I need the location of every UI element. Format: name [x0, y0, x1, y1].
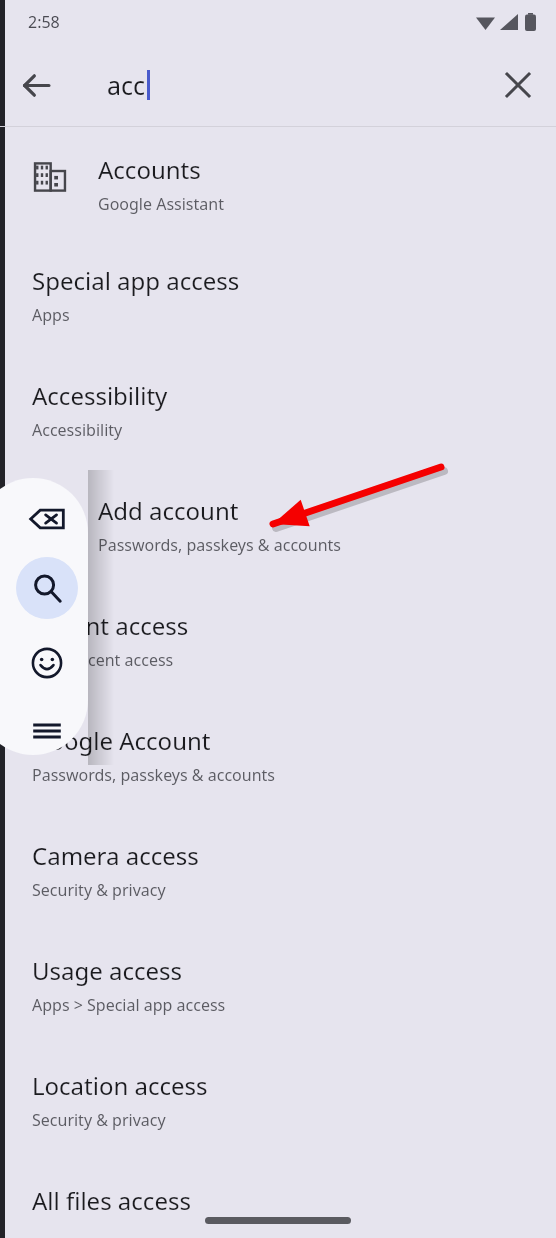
button[interactable]: Menu: [16, 707, 78, 755]
staticText: on > Recent access: [32, 649, 174, 671]
staticText: Camera access: [32, 839, 199, 872]
staticText: Location access: [32, 1069, 208, 1102]
button[interactable]: Emoji: [16, 632, 78, 694]
staticText: All files access: [32, 1184, 191, 1217]
button[interactable]: Accounts: [0, 127, 556, 242]
staticText: Security & privacy: [32, 879, 166, 901]
staticText: Usage access: [32, 954, 183, 987]
button[interactable]: Location access: [0, 1047, 556, 1162]
staticText: Add account: [98, 494, 239, 527]
staticText: Security & privacy: [32, 1109, 166, 1131]
button[interactable]: Accessibility: [0, 357, 556, 472]
button[interactable]: Usage access: [0, 932, 556, 1047]
button[interactable]: Clear search: [492, 59, 544, 111]
staticText: Special app access: [32, 264, 240, 297]
button[interactable]: All files access: [0, 1162, 556, 1238]
button[interactable]: Backspace: [16, 488, 78, 550]
button[interactable]: Add account: [0, 472, 556, 587]
staticText: Google Assistant: [98, 193, 224, 215]
staticText: 2:58: [28, 11, 60, 33]
button[interactable]: Recent access: [0, 587, 556, 702]
staticText: Accessibility: [32, 379, 168, 412]
staticText: Recent access: [32, 609, 189, 642]
staticText: Apps > Special app access: [32, 994, 226, 1016]
staticText: Apps: [32, 304, 70, 326]
button[interactable]: Search: [16, 557, 78, 619]
button[interactable]: Google Account: [0, 702, 556, 817]
staticText: Passwords, passkeys & accounts: [32, 764, 275, 786]
staticText: Accessibility: [32, 419, 123, 441]
staticText: Accounts: [98, 153, 201, 186]
button[interactable]: Back: [10, 59, 62, 111]
staticText: Google Account: [32, 724, 211, 757]
staticText: Passwords, passkeys & accounts: [98, 534, 341, 556]
button[interactable]: Camera access: [0, 817, 556, 932]
button[interactable]: Special app access: [0, 242, 556, 357]
staticText: acc: [107, 68, 146, 102]
